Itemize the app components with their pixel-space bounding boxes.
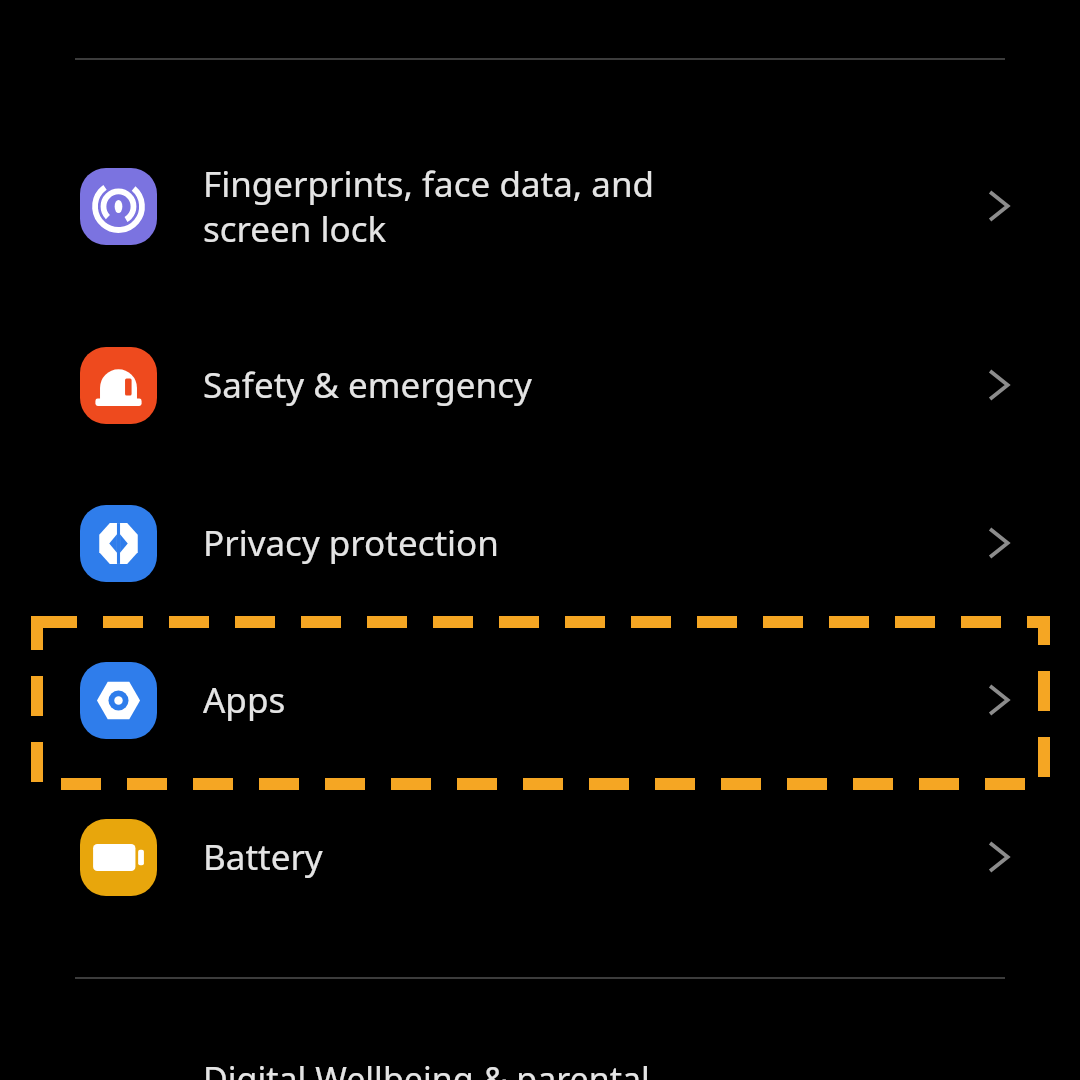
staticText: Digital Wellbeing & parental (203, 1056, 650, 1080)
button[interactable]: Fingerprints, face data, and screen lock (0, 131, 1080, 281)
button[interactable]: Safety & emergency (0, 310, 1080, 460)
button[interactable]: Privacy protection (0, 468, 1080, 618)
staticText: Privacy protection (203, 519, 976, 567)
staticText: Fingerprints, face data, and screen lock (203, 160, 976, 253)
staticText: Safety & emergency (203, 361, 976, 409)
staticText: Apps (203, 676, 976, 724)
staticText: Battery (203, 833, 976, 881)
button[interactable]: Apps (0, 625, 1080, 775)
button[interactable]: Battery (0, 782, 1080, 932)
